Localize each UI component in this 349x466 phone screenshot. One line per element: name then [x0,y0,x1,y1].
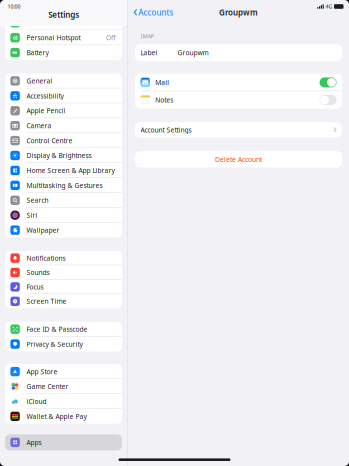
staticText: Accessibility [26,91,63,100]
button[interactable]: Wallpaper [5,223,122,238]
button[interactable]: Mobile Data [5,15,122,30]
staticText: Apple Pencil [26,106,65,115]
staticText: Wallpaper [26,226,59,235]
staticText: Privacy & Security [26,340,82,348]
button[interactable]: Search [5,193,122,208]
staticText: Game Center [26,382,68,391]
staticText: Label [141,48,158,57]
staticText: Face ID & Passcode [26,325,87,334]
button[interactable]: Display & Brightness [5,148,122,163]
button[interactable]: Control Centre [5,133,122,148]
staticText: Control Centre [26,136,72,145]
staticText: Off [106,33,116,42]
staticText: Delete Account [215,155,262,164]
button[interactable]: Wallet & Apple Pay [5,409,122,424]
staticText: Home Screen & App Library [26,166,114,175]
staticText: Screen Time [26,297,66,306]
staticText: Groupwm [178,48,209,57]
staticText: IMAP [141,33,154,40]
staticText: Notes [155,96,173,104]
button[interactable]: Camera [5,118,122,133]
button[interactable]: Home Screen & App Library [5,163,122,178]
button[interactable]: Accessibility [5,88,122,103]
staticText: Groupwm [219,7,258,18]
button[interactable]: Screen Time [5,294,122,308]
button[interactable]: iCloud [5,394,122,409]
button[interactable]: Personal Hotspot [5,30,122,45]
button[interactable]: Siri [5,208,122,223]
button[interactable]: Accounts [128,0,177,25]
button[interactable]: General [5,73,122,88]
button[interactable]: Notes [320,95,337,105]
staticText: iCloud [26,397,46,406]
button[interactable]: Focus [5,280,122,294]
staticText: Sounds [26,268,49,277]
button[interactable]: Sounds [5,265,122,280]
button[interactable]: Account Settings [135,122,342,137]
staticText: Notifications [26,254,65,263]
staticText: Camera [26,121,51,130]
button[interactable]: Notifications [5,251,122,265]
staticText: Focus [26,282,43,291]
staticText: Personal Hotspot [26,33,80,42]
button[interactable]: Battery [5,45,122,60]
staticText: General [26,76,52,85]
button[interactable]: Mail [320,77,337,87]
staticText: Battery [26,48,48,57]
staticText: Search [26,196,48,205]
staticText: Wallet & Apple Pay [26,412,86,421]
button[interactable]: App Store [5,364,122,379]
button[interactable]: Delete Account [135,151,342,167]
button[interactable]: Apps [5,434,122,450]
staticText: Mail [155,78,169,87]
staticText: Apps [26,438,41,447]
staticText: Display & Brightness [26,151,91,160]
staticText: Siri [26,211,37,220]
button[interactable]: Game Center [5,379,122,394]
button[interactable]: Apple Pencil [5,103,122,118]
staticText: Multitasking & Gestures [26,181,102,190]
button[interactable]: Multitasking & Gestures [5,178,122,193]
staticText: 4G [325,3,332,10]
staticText: Account Settings [141,125,192,134]
button[interactable]: Face ID & Passcode [5,322,122,337]
staticText: Settings [48,9,79,20]
button[interactable]: Privacy & Security [5,337,122,351]
staticText: Accounts [138,7,173,18]
staticText: App Store [26,367,57,376]
staticText: 10:00 [7,3,20,10]
